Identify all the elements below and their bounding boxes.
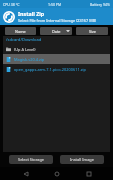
button[interactable]: Name	[5, 27, 36, 35]
staticText: Install Zip	[18, 10, 45, 17]
staticText: Battery 94%	[90, 2, 110, 7]
staticText: Select File from Internal Storage (23167…	[18, 18, 97, 23]
staticText: Size	[89, 29, 96, 34]
staticText: Name	[15, 29, 26, 34]
button[interactable]: Home	[50, 167, 63, 180]
button[interactable]: Install Image	[60, 155, 104, 164]
staticText: /sdcard/Download	[6, 37, 42, 43]
staticText: Install Image	[70, 157, 94, 162]
staticText: CPU 38 °C	[3, 2, 20, 7]
staticText: open_gapps-arm-7.1-pico-20200611.zip	[14, 67, 86, 72]
button[interactable]: Size	[76, 27, 108, 35]
staticText: Date	[52, 29, 61, 34]
button[interactable]: Date	[40, 27, 72, 35]
staticText: Magisk-v20.4.zip	[14, 57, 45, 62]
button[interactable]: Back	[19, 167, 32, 180]
button[interactable]: Magisk-v20.4.zip	[3, 54, 110, 64]
button[interactable]: (Up A Level)	[3, 44, 110, 54]
staticText: Select Storage	[18, 157, 45, 162]
button[interactable]: Select Storage	[9, 155, 53, 164]
button[interactable]: Recents	[82, 167, 95, 180]
staticText: 1:50 PM	[48, 2, 62, 7]
staticText: (Up A Level)	[14, 47, 36, 52]
button[interactable]: open_gapps-arm-7.1-pico-20200611.zip	[3, 64, 110, 74]
